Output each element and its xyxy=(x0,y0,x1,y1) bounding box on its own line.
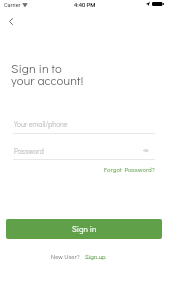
button[interactable]: Sign in xyxy=(6,219,162,239)
staticText: Your email/phone xyxy=(14,119,68,128)
button[interactable]: Show password xyxy=(139,143,153,157)
staticText: Sign in to your account! xyxy=(11,60,84,88)
staticText: Carrier xyxy=(4,2,21,8)
button[interactable]: Back xyxy=(2,12,20,30)
staticText: Password xyxy=(14,146,44,155)
staticText: Sign in xyxy=(72,223,97,234)
staticText: 4:40 PM xyxy=(74,2,96,9)
button[interactable]: Sign up xyxy=(85,252,106,260)
button[interactable]: Forgot Password? xyxy=(104,165,155,174)
staticText: New User? xyxy=(51,252,80,260)
